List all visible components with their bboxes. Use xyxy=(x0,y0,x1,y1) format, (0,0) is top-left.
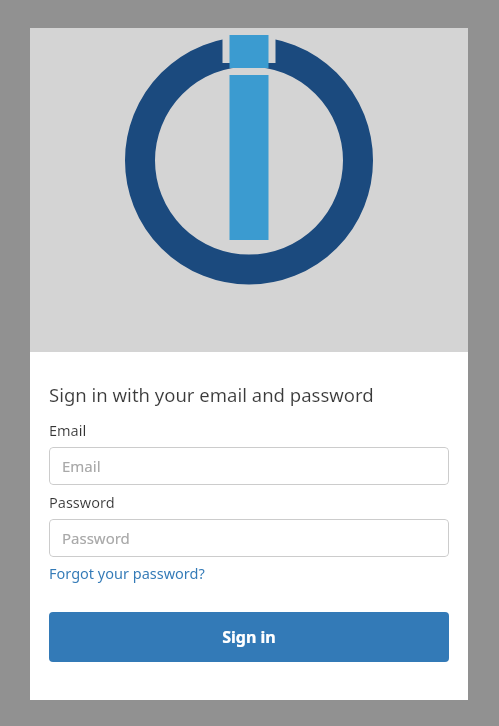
button[interactable]: Password xyxy=(49,519,449,557)
staticText: Password xyxy=(49,492,115,512)
staticText: Password xyxy=(62,528,130,548)
staticText: Sign in with your email and password xyxy=(49,382,374,407)
staticText: Email xyxy=(62,456,101,476)
staticText: Forgot your password? xyxy=(49,563,205,583)
button[interactable]: Email xyxy=(49,447,449,485)
staticText: Email xyxy=(49,420,87,440)
button[interactable]: Forgot your password? xyxy=(49,563,205,583)
button[interactable]: Sign in xyxy=(49,612,449,662)
other: App logo xyxy=(124,35,374,287)
staticText: Sign in xyxy=(222,626,276,648)
